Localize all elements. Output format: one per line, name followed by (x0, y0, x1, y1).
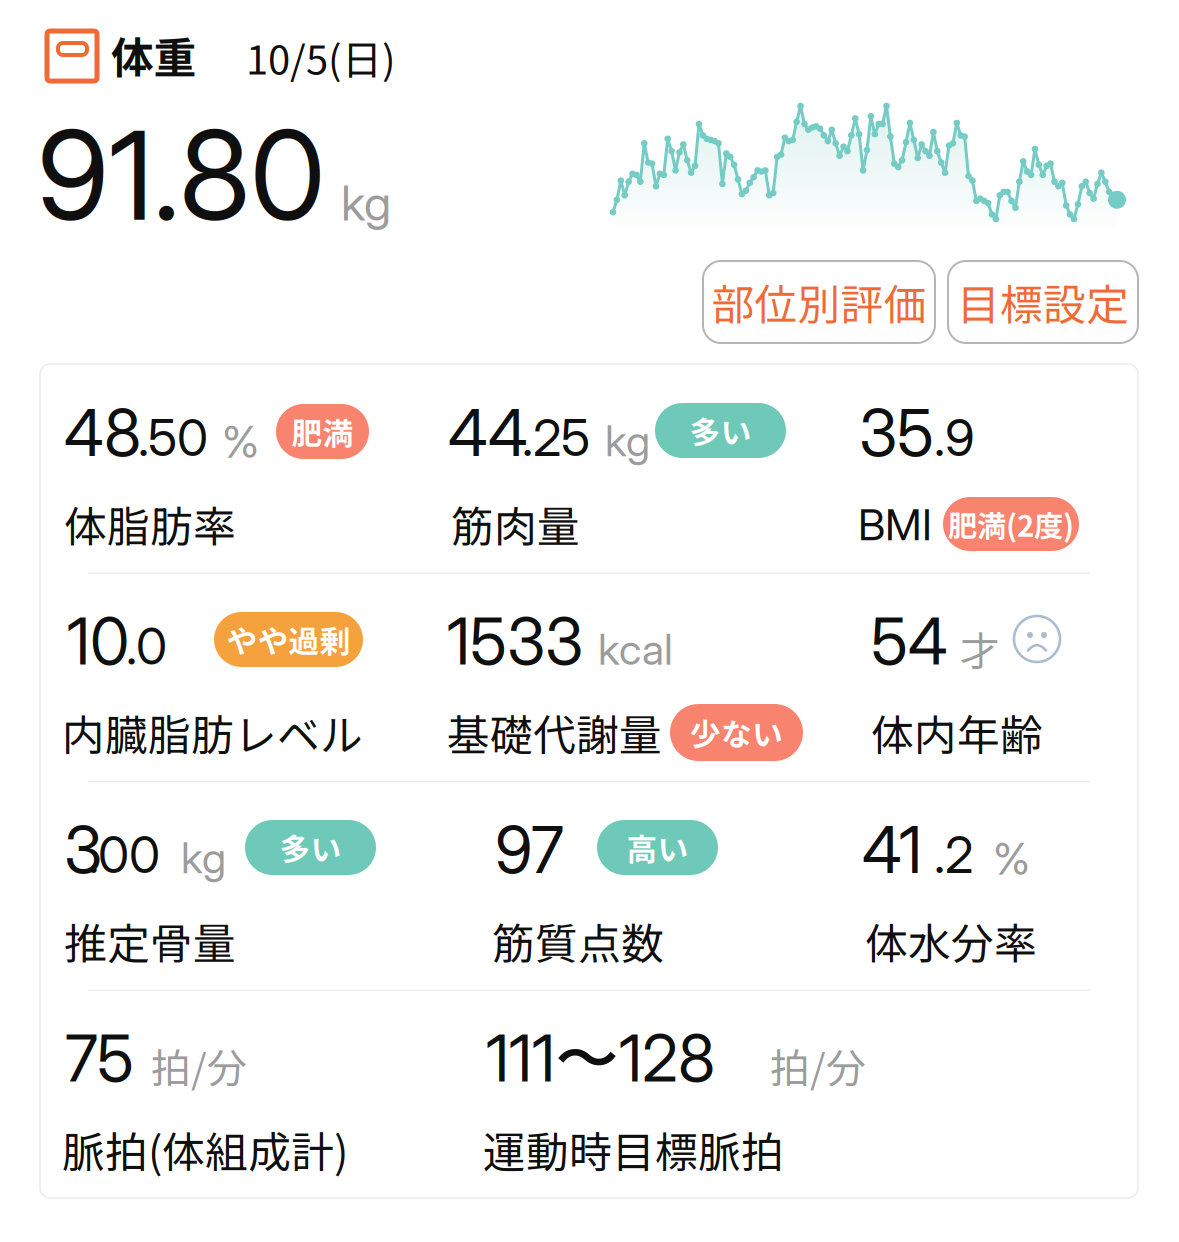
staticText: 10 (67, 602, 129, 680)
staticText: 35 (859, 394, 934, 471)
staticText: kcal (598, 623, 673, 675)
staticText: 少ない (690, 710, 783, 755)
staticText: 44 (448, 394, 528, 471)
staticText: % (222, 415, 259, 468)
staticText: kg (341, 174, 391, 232)
staticText: 体内年齢 (871, 701, 1043, 763)
staticText: 多い (689, 408, 751, 453)
staticText: .00 (88, 824, 160, 885)
staticText: 筋質点数 (492, 910, 664, 972)
staticText: 内臓脂肪レベル (62, 701, 363, 763)
staticText: .50 (138, 407, 208, 468)
staticText: 91.80 (37, 101, 325, 249)
staticText: 1533 (447, 602, 583, 680)
staticText: 脈拍(体組成計) (62, 1118, 348, 1180)
staticText: 97 (495, 811, 564, 888)
staticText: kg (181, 832, 226, 884)
staticText: 111〜128 (486, 1019, 715, 1100)
staticText: .0 (126, 615, 167, 677)
staticText: 推定骨量 (64, 910, 236, 972)
staticText: 筋肉量 (451, 493, 580, 555)
staticText: .25 (522, 407, 590, 468)
staticText: 拍/分 (151, 1036, 247, 1094)
staticText: 41 (862, 811, 922, 888)
staticText: 才 (960, 619, 1000, 677)
button[interactable]: 目標設定 (948, 261, 1138, 343)
staticText: 体脂肪率 (64, 493, 236, 555)
staticText: 基礎代謝量 (447, 701, 662, 763)
staticText: 高い (626, 825, 688, 870)
staticText: 体水分率 (865, 910, 1037, 972)
staticText: BMI (858, 499, 932, 551)
staticText: 運動時目標脈拍 (483, 1118, 784, 1180)
staticText: 体重 (111, 24, 197, 86)
staticText: 拍/分 (770, 1036, 866, 1094)
staticText: 10/5(日) (246, 28, 396, 86)
staticText: 目標設定 (957, 271, 1129, 333)
staticText: .9 (934, 407, 975, 468)
staticText: 54 (871, 602, 948, 680)
staticText: 75 (65, 1019, 134, 1097)
staticText: 48 (64, 394, 141, 471)
staticText: 肥満 (291, 409, 353, 454)
staticText: kg (605, 415, 650, 467)
staticText: .2 (934, 824, 973, 885)
staticText: 部位別評価 (711, 271, 926, 333)
staticText: 肥満(2度) (948, 503, 1074, 545)
staticText: 多い (279, 825, 341, 870)
staticText: やや過剰 (226, 617, 350, 662)
button[interactable]: 部位別評価 (703, 261, 935, 343)
staticText: 3 (64, 811, 102, 888)
staticText: % (993, 832, 1030, 885)
